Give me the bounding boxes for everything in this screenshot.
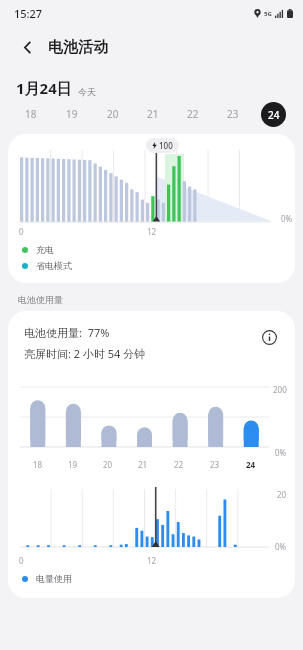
staticText: 电量使用 xyxy=(36,573,72,584)
button[interactable]: 22 xyxy=(173,98,213,130)
staticText: 200 xyxy=(273,384,287,395)
staticText: 20 xyxy=(107,107,119,121)
staticText: 0% xyxy=(281,213,293,224)
staticText: 23 xyxy=(210,459,220,470)
staticText: 21 xyxy=(147,107,159,121)
button[interactable]: 21 xyxy=(133,98,173,130)
staticText: 省电模式 xyxy=(36,260,72,271)
staticText: 电池使用量: 77% xyxy=(24,325,110,340)
staticText: 0% xyxy=(275,447,287,458)
staticText: 12 xyxy=(147,555,157,566)
staticText: 19 xyxy=(66,107,78,121)
staticText: 18 xyxy=(33,459,43,470)
staticText: 24 xyxy=(268,108,280,122)
staticText: 5G xyxy=(264,10,272,18)
staticText: 24 xyxy=(246,459,256,470)
staticText: 1月24日 xyxy=(16,78,72,98)
staticText: 15:27 xyxy=(14,6,43,21)
staticText: 今天 xyxy=(78,86,96,97)
staticText: 0% xyxy=(275,541,287,552)
button[interactable]: Back xyxy=(10,30,44,64)
button[interactable]: 19 xyxy=(51,98,92,130)
staticText: 0 xyxy=(19,226,24,237)
staticText: 充电 xyxy=(36,244,54,255)
staticText: 电池活动 xyxy=(48,38,108,57)
staticText: 23 xyxy=(227,107,239,121)
staticText: 20 xyxy=(103,459,113,470)
button[interactable]: 20 xyxy=(92,98,133,130)
staticText: 19 xyxy=(68,459,78,470)
staticText: 0 xyxy=(19,555,24,566)
staticText: 电池使用量 xyxy=(18,294,63,305)
staticText: 18 xyxy=(25,107,37,121)
button[interactable]: 24 xyxy=(253,98,293,130)
staticText: 亮屏时间: 2 小时 54 分钟 xyxy=(24,346,146,361)
staticText: 100 xyxy=(159,140,173,151)
button[interactable]: Info xyxy=(257,325,281,349)
staticText: 22 xyxy=(174,459,184,470)
staticText: 22 xyxy=(187,107,199,121)
button[interactable]: 23 xyxy=(213,98,253,130)
staticText: 12 xyxy=(147,226,157,237)
staticText: 21 xyxy=(138,459,148,470)
button[interactable]: 18 xyxy=(10,98,51,130)
staticText: 20 xyxy=(277,489,287,500)
